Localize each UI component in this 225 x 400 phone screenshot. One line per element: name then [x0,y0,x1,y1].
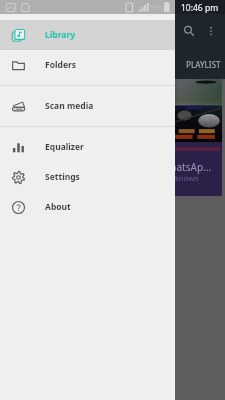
staticText: 10:46 pm [181,2,219,14]
button[interactable]: Search [178,20,200,42]
button[interactable]: PLAYLIST [186,49,225,79]
button[interactable]: About [0,192,175,222]
staticText: Settings [45,171,80,183]
staticText: Folders [45,59,77,71]
button[interactable]: Scan media [0,91,175,121]
staticText: Unknown [165,173,199,183]
staticText: PLAYLIST [186,59,221,70]
button[interactable]: Equalizer [0,132,175,162]
staticText: Library [45,29,76,41]
button[interactable]: ARTISTS [110,49,172,79]
button[interactable]: Settings [0,162,175,192]
staticText: Scan media [45,100,94,112]
staticText: WhatsAp... [161,160,212,174]
button[interactable]: Folders [0,50,175,80]
button[interactable]: Library [0,20,175,50]
staticText: 93% [150,3,163,12]
button[interactable]: More options [200,20,222,42]
staticText: Equalizer [45,141,84,153]
staticText: About [45,201,71,213]
